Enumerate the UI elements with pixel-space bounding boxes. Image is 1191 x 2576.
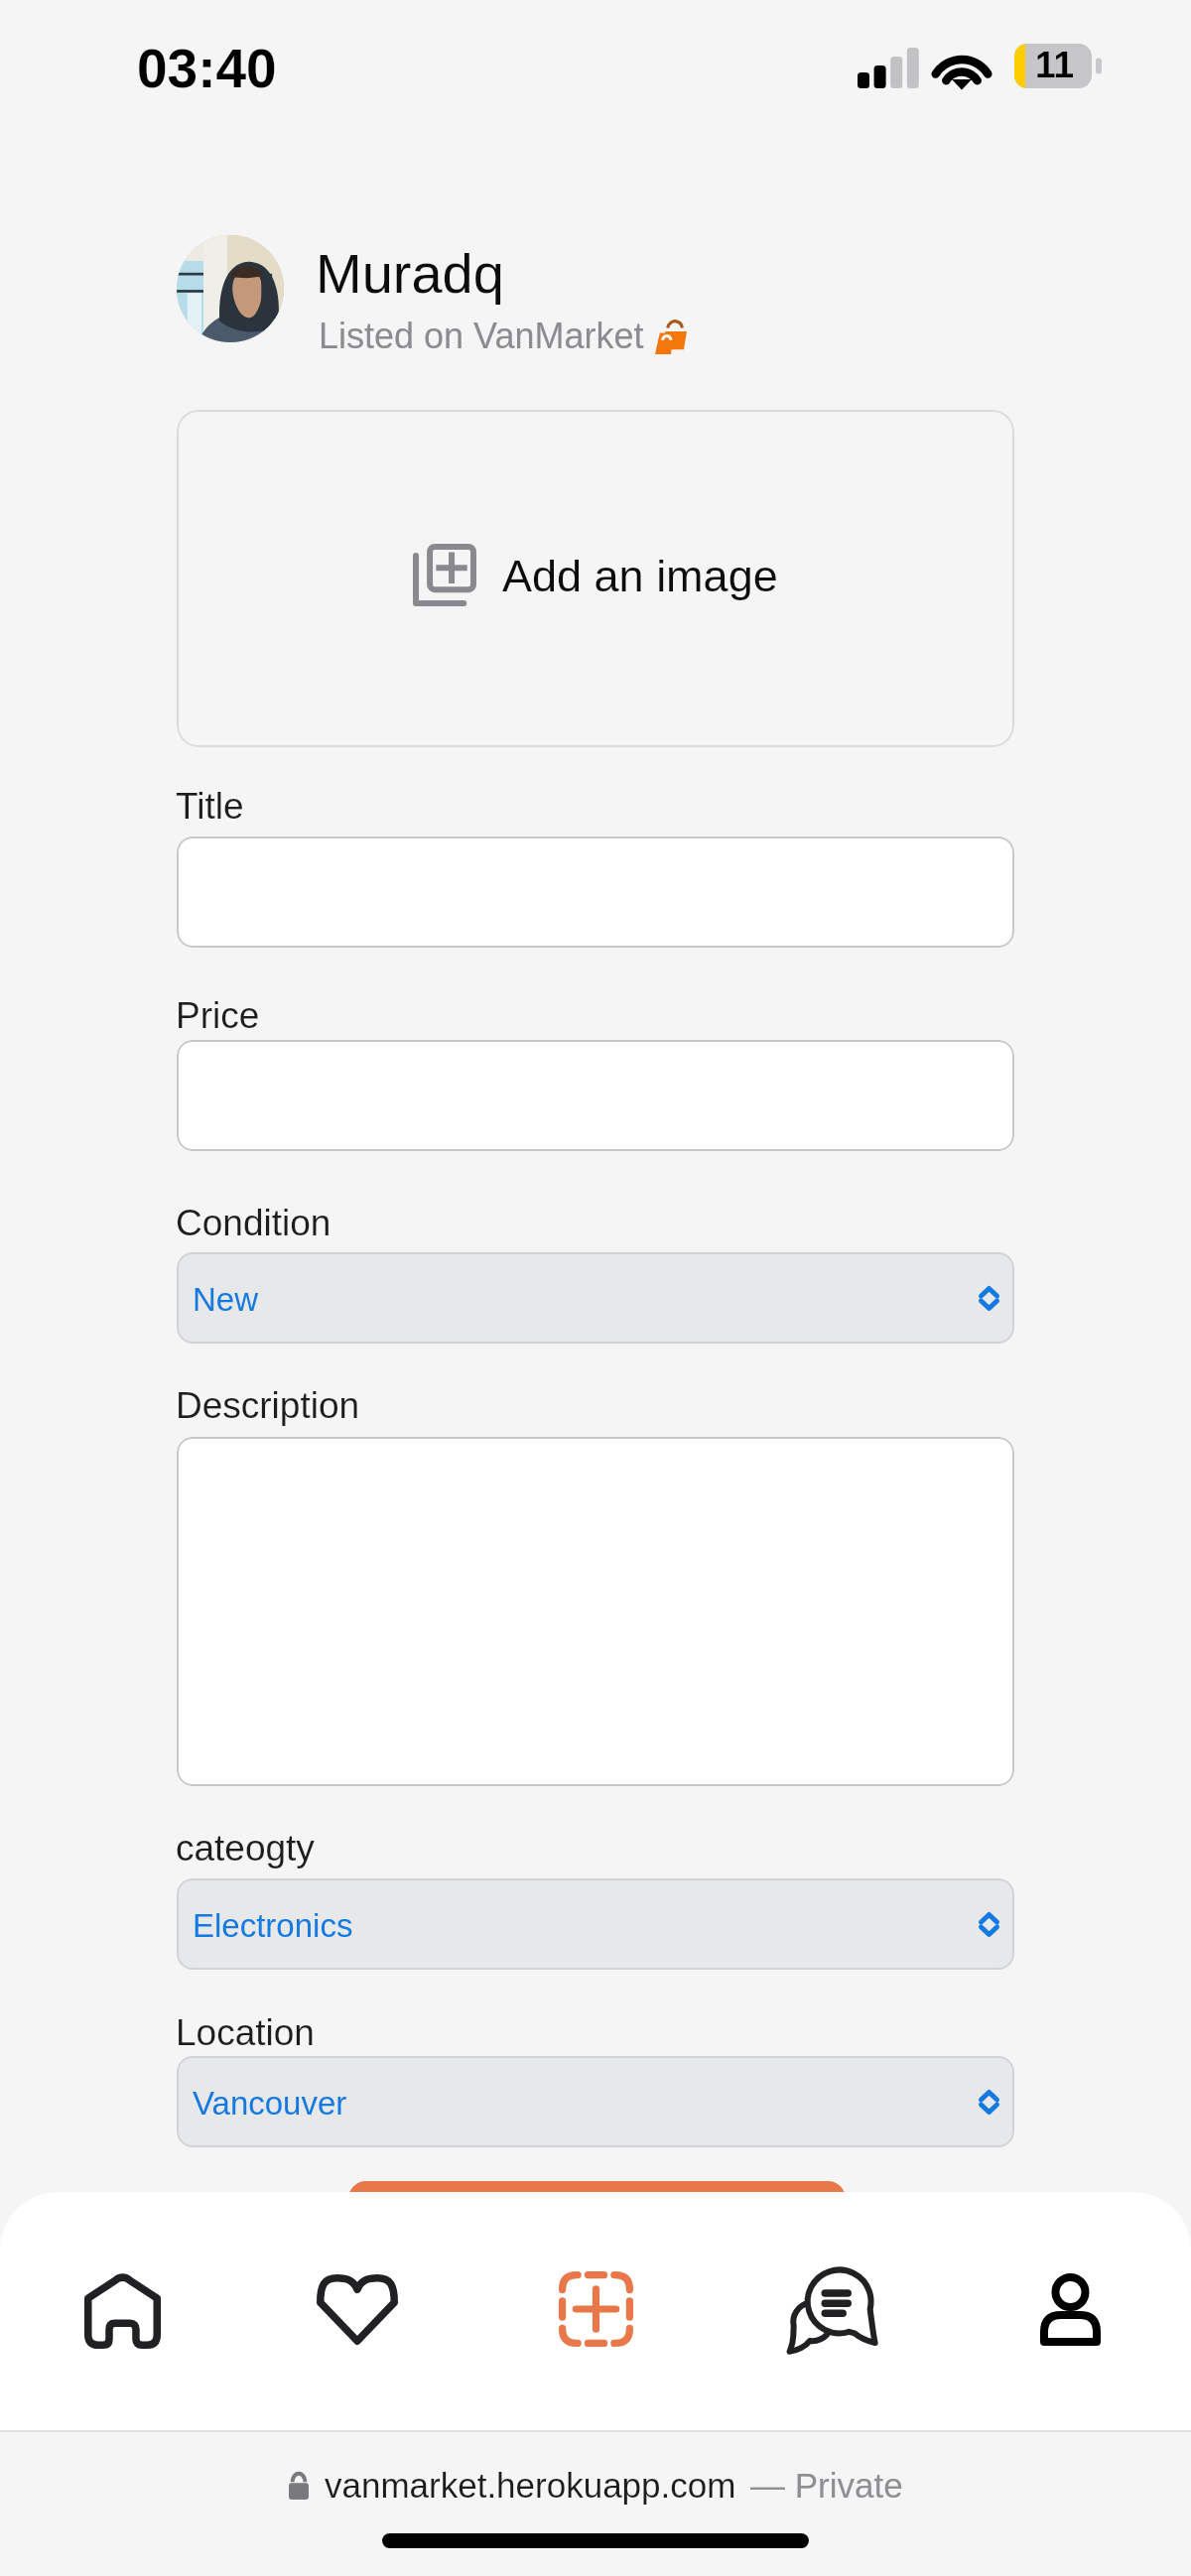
button[interactable]: Create listing [536, 2250, 655, 2369]
button[interactable]: Electronics [177, 1878, 1014, 1970]
button[interactable]: Messages [772, 2250, 891, 2369]
staticText: Listed on VanMarket [319, 316, 654, 355]
staticText: cateogty [176, 1828, 315, 1868]
staticText: Electronics [193, 1907, 353, 1944]
staticText: Muradq [316, 242, 504, 305]
staticText: Title [176, 786, 244, 827]
button[interactable]: Profile [1010, 2250, 1129, 2369]
staticText: Add an image [502, 551, 778, 600]
button[interactable] [177, 837, 1014, 948]
staticText: Price [176, 995, 260, 1036]
staticText: — Private [750, 2466, 903, 2505]
button[interactable] [348, 2181, 846, 2290]
staticText: Description [176, 1385, 360, 1426]
staticText: 03:40 [137, 38, 277, 98]
button[interactable]: Favorites [298, 2250, 417, 2369]
staticText: Location [176, 2012, 315, 2053]
staticText: 11 [1035, 45, 1075, 85]
button[interactable] [177, 1437, 1014, 1786]
button[interactable]: Add an image [177, 410, 1014, 747]
button[interactable]: Vancouver [177, 2056, 1014, 2147]
staticText: Vancouver [193, 2085, 347, 2122]
button[interactable]: Home [63, 2250, 182, 2369]
button[interactable] [177, 1040, 1014, 1151]
staticText: New [193, 1281, 259, 1318]
staticText: vanmarket.herokuapp.com [325, 2466, 736, 2505]
staticText: Condition [176, 1203, 331, 1243]
button[interactable]: New [177, 1252, 1014, 1344]
